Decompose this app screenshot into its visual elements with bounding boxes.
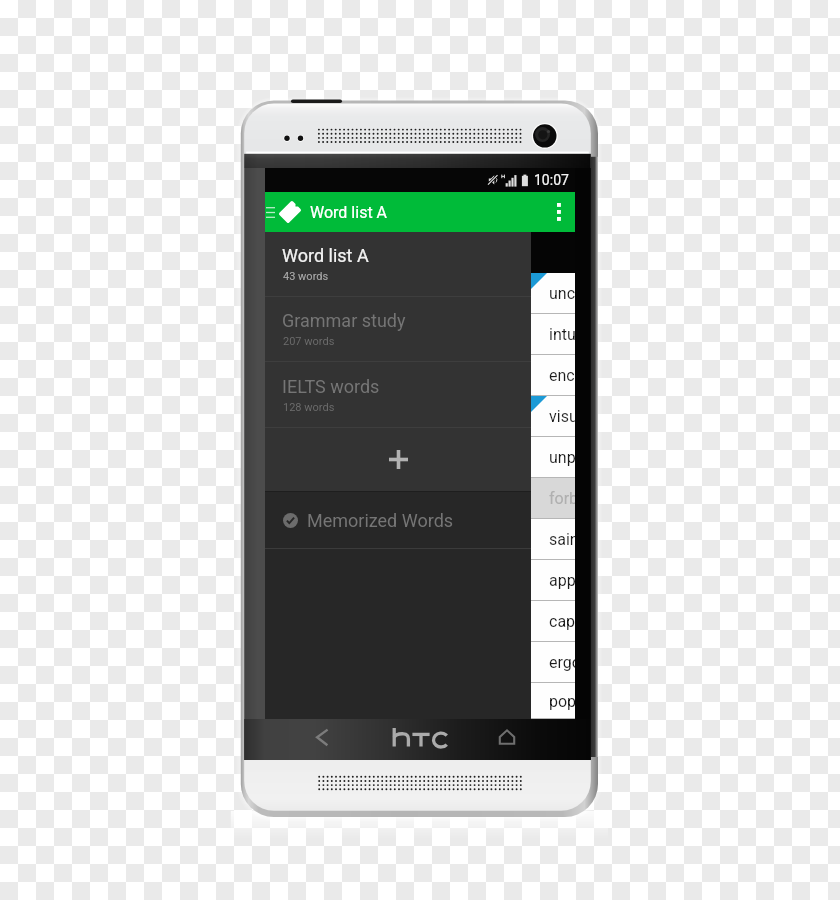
staticText: Word list A: [310, 203, 388, 222]
staticText: uncanny: [549, 284, 575, 303]
button[interactable]: apprehend: [531, 560, 575, 601]
button[interactable]: IELTS words: [265, 362, 531, 427]
button[interactable]: uncanny: [531, 273, 575, 314]
button[interactable]: intuitive: [531, 314, 575, 355]
button[interactable]: Open navigation drawer: [265, 192, 310, 232]
button[interactable]: forbearance: [531, 478, 575, 519]
button[interactable]: Memorized Words: [265, 492, 531, 548]
staticText: 128 words: [283, 401, 335, 414]
button[interactable]: Add word list: [265, 428, 531, 491]
button[interactable]: Word list A: [265, 232, 531, 296]
button[interactable]: unprecedented: [531, 437, 575, 478]
button[interactable]: More options: [543, 192, 575, 232]
staticText: 207 words: [283, 335, 335, 348]
button[interactable]: capitulate: [531, 601, 575, 642]
staticText: unprecedented: [549, 448, 575, 467]
button[interactable]: encompass: [531, 355, 575, 396]
staticText: intuitive: [549, 325, 575, 344]
staticText: IELTS words: [282, 376, 380, 397]
button[interactable]: populace: [531, 683, 575, 719]
staticText: forbearance: [549, 489, 575, 508]
staticText: encompass: [549, 366, 575, 385]
staticText: saintly: [549, 530, 575, 549]
staticText: Word list A: [282, 245, 369, 266]
staticText: apprehend: [549, 571, 575, 590]
button[interactable]: visualize: [531, 396, 575, 437]
button[interactable]: Grammar study: [265, 297, 531, 361]
button[interactable]: saintly: [531, 519, 575, 560]
button[interactable]: ergonomic: [531, 642, 575, 683]
staticText: Memorized Words: [307, 510, 454, 531]
staticText: 10:07: [534, 172, 569, 188]
staticText: visualize: [549, 407, 575, 426]
staticText: ergonomic: [549, 653, 575, 672]
staticText: Grammar study: [282, 310, 406, 331]
staticText: 43 words: [283, 270, 329, 283]
staticText: populace: [549, 692, 575, 711]
staticText: capitulate: [549, 612, 575, 631]
